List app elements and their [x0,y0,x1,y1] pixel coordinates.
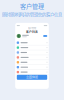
staticText: 立即体验 [26,75,38,79]
button[interactable] [15,70,49,75]
staticText: 随时随地更好的管理您的客户信息 [2,11,62,18]
button[interactable] [15,55,49,60]
button[interactable] [15,65,49,70]
button[interactable] [15,60,49,65]
staticText: 客户管理 [20,1,44,10]
button[interactable] [15,45,49,50]
button[interactable] [15,50,49,55]
button[interactable] [15,40,49,45]
button[interactable]: 立即体验 [17,75,47,80]
staticText: 客户管理 [28,26,36,30]
staticText: 客户列表 [26,29,38,34]
